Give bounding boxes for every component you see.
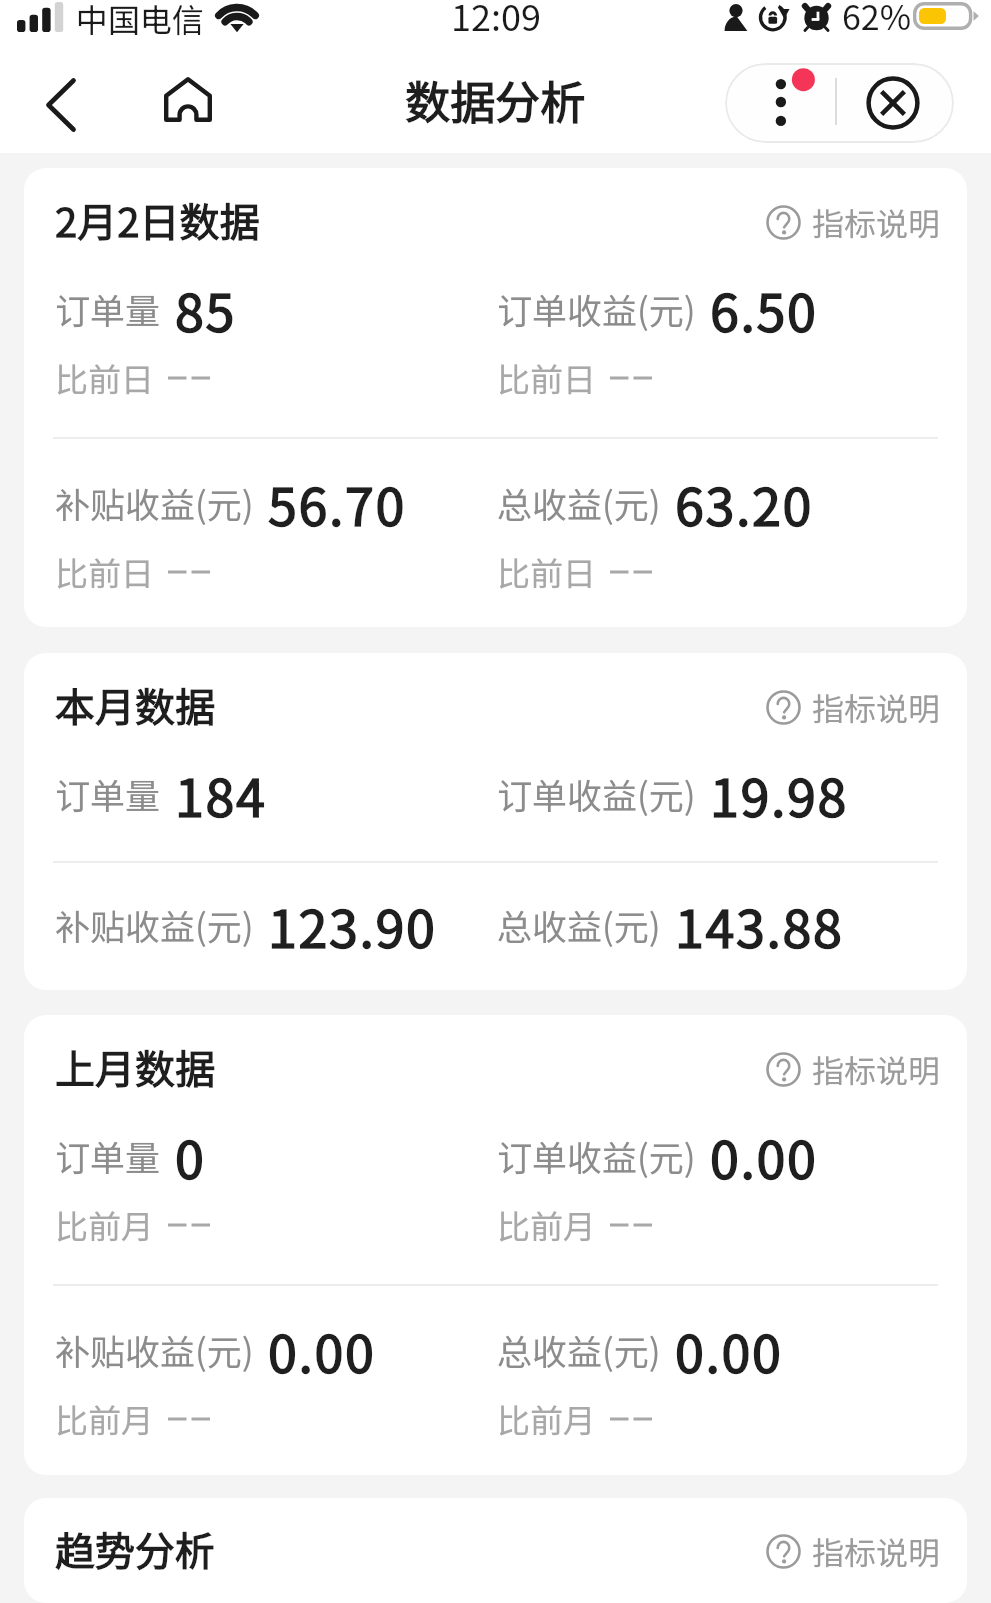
- staticText: 6.50: [710, 272, 818, 347]
- staticText: 订单收益(元): [497, 283, 696, 334]
- staticText: 比前日: [497, 354, 596, 402]
- button[interactable]: Back: [26, 69, 96, 139]
- staticText: 总收益(元): [497, 899, 661, 950]
- staticText: 62%: [842, 0, 912, 40]
- staticText: 比前日: [55, 548, 154, 596]
- button[interactable]: 指标说明: [766, 199, 941, 245]
- staticText: 184: [175, 757, 267, 832]
- button[interactable]: 指标说明: [766, 684, 941, 730]
- button[interactable]: 指标说明: [766, 1046, 941, 1092]
- staticText: 0.00: [268, 1313, 376, 1388]
- staticText: 本月数据: [55, 676, 215, 734]
- staticText: 比前月: [497, 1201, 596, 1249]
- staticText: 补贴收益(元): [55, 1324, 254, 1375]
- staticText: 19.98: [710, 757, 848, 832]
- staticText: 数据分析: [405, 67, 586, 132]
- staticText: 订单收益(元): [497, 768, 696, 819]
- staticText: 比前月: [497, 1395, 596, 1443]
- staticText: 上月数据: [55, 1038, 215, 1096]
- staticText: 指标说明: [812, 1528, 941, 1574]
- staticText: 总收益(元): [497, 1324, 661, 1375]
- staticText: 补贴收益(元): [55, 477, 254, 528]
- button[interactable]: Home: [155, 66, 223, 134]
- staticText: 订单量: [55, 283, 161, 334]
- staticText: 143.88: [675, 888, 844, 963]
- button[interactable]: Close: [858, 69, 926, 137]
- staticText: 2月2日数据: [55, 191, 260, 249]
- button[interactable]: 指标说明: [766, 1528, 941, 1574]
- staticText: 补贴收益(元): [55, 899, 254, 950]
- staticText: 趋势分析: [55, 1520, 215, 1578]
- staticText: 0.00: [710, 1119, 818, 1194]
- staticText: 85: [175, 272, 236, 347]
- staticText: 比前月: [55, 1201, 154, 1249]
- staticText: 订单收益(元): [497, 1130, 696, 1181]
- staticText: 0: [175, 1119, 206, 1194]
- staticText: 总收益(元): [497, 477, 661, 528]
- button[interactable]: More options: [753, 71, 821, 135]
- staticText: 12:09: [451, 0, 541, 41]
- staticText: 中国电信: [76, 0, 205, 41]
- staticText: 63.20: [675, 466, 813, 541]
- staticText: 56.70: [268, 466, 406, 541]
- staticText: 比前日: [55, 354, 154, 402]
- staticText: 订单量: [55, 768, 161, 819]
- staticText: 0.00: [675, 1313, 783, 1388]
- staticText: 订单量: [55, 1130, 161, 1181]
- staticText: 比前日: [497, 548, 596, 596]
- staticText: 指标说明: [812, 684, 941, 730]
- staticText: 指标说明: [812, 1046, 941, 1092]
- staticText: 指标说明: [812, 199, 941, 245]
- staticText: 比前月: [55, 1395, 154, 1443]
- staticText: 123.90: [268, 888, 437, 963]
